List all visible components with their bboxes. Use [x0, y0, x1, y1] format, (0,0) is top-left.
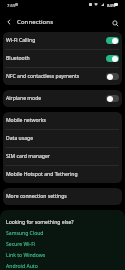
button[interactable]: Data usage [3, 130, 122, 147]
button[interactable]: Wi-Fi Calling [3, 32, 122, 49]
button[interactable]: Secure Wi-Fi [6, 241, 36, 248]
staticText: 7:55 [7, 3, 16, 9]
button[interactable]: Search [107, 11, 125, 32]
button[interactable]: Back [0, 11, 17, 32]
button[interactable]: Link to Windows [6, 252, 46, 259]
staticText: Data usage [6, 135, 34, 142]
button[interactable]: Mobile networks [3, 112, 122, 129]
staticText: More connection settings [6, 193, 67, 200]
staticText: Secure Wi-Fi [6, 241, 36, 248]
staticText: Bluetooth [6, 55, 104, 62]
staticText: Looking for something else? [6, 219, 74, 226]
staticText: SIM card manager [6, 153, 50, 160]
button[interactable]: SIM card manager [3, 148, 122, 165]
button[interactable]: Android Auto [6, 263, 38, 270]
button[interactable]: Samsung Cloud [6, 230, 44, 237]
button[interactable]: Airplane mode [3, 90, 122, 107]
staticText: Airplane mode [6, 95, 104, 102]
staticText: Mobile networks [6, 117, 46, 124]
staticText: Mobile Hotspot and Tethering [6, 171, 78, 178]
staticText: NFC and contactless payments [6, 73, 104, 80]
button[interactable]: More connection settings [3, 188, 122, 205]
staticText: Wi-Fi Calling [6, 37, 104, 44]
staticText: Link to Windows [6, 252, 46, 259]
staticText: Connections [17, 18, 54, 26]
staticText: Android Auto [6, 263, 38, 270]
button[interactable]: NFC and contactless payments [3, 68, 122, 85]
button[interactable]: Mobile Hotspot and Tethering [3, 166, 122, 183]
staticText: 84% [107, 3, 116, 9]
button[interactable]: Bluetooth [3, 50, 122, 67]
staticText: Samsung Cloud [6, 230, 44, 237]
